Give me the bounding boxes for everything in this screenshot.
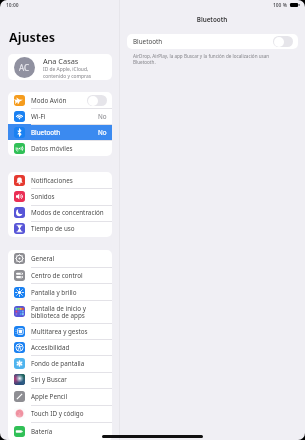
staticText: Bluetooth: [31, 128, 61, 137]
staticText: Modo Avión: [31, 96, 67, 105]
button[interactable]: Sonidos: [8, 188, 112, 204]
button[interactable]: Apple Pencil: [8, 388, 112, 405]
staticText: Apple Pencil: [31, 392, 68, 401]
staticText: Siri y Buscar: [31, 375, 67, 384]
staticText: Touch ID y código: [31, 409, 84, 418]
button[interactable]: Toggle: [87, 95, 107, 106]
button[interactable]: Toggle: [273, 36, 293, 47]
staticText: ID de Apple, iCloud, contenido y compras: [43, 66, 92, 79]
staticText: No: [98, 128, 107, 137]
button[interactable]: Multitarea y gestos: [8, 323, 112, 339]
staticText: Bluetooth: [119, 15, 305, 24]
staticText: General: [31, 254, 55, 263]
button[interactable]: Bluetooth: [8, 124, 112, 140]
staticText: Notificaciones: [31, 176, 73, 185]
button[interactable]: Pantalla y brillo: [8, 284, 112, 300]
staticText: Ajustes: [9, 29, 55, 46]
staticText: Centro de control: [31, 271, 83, 280]
staticText: AC: [19, 62, 30, 73]
staticText: Wi-Fi: [31, 112, 46, 121]
staticText: Pantalla y brillo: [31, 288, 77, 297]
button[interactable]: AC: [8, 54, 112, 80]
staticText: Accesibilidad: [31, 343, 70, 352]
staticText: Fondo de pantalla: [31, 359, 85, 368]
button[interactable]: Bluetooth: [127, 34, 298, 49]
staticText: Modos de concentración: [31, 208, 104, 217]
staticText: Tiempo de uso: [31, 224, 75, 233]
button[interactable]: Wi-Fi: [8, 108, 112, 124]
staticText: Bluetooth: [133, 37, 163, 46]
staticText: 10:00: [6, 2, 19, 9]
staticText: Ana Casas: [43, 56, 79, 66]
button[interactable]: Accesibilidad: [8, 339, 112, 355]
staticText: No: [98, 112, 107, 121]
button[interactable]: Siri y Buscar: [8, 371, 112, 388]
button[interactable]: Touch ID y código: [8, 405, 112, 422]
button[interactable]: Tiempo de uso: [8, 220, 112, 236]
button[interactable]: Centro de control: [8, 267, 112, 284]
button[interactable]: Fondo de pantalla: [8, 355, 112, 371]
button[interactable]: Modo Avión: [8, 92, 112, 108]
staticText: Batería: [31, 427, 53, 436]
button[interactable]: Modos de concentración: [8, 204, 112, 220]
staticText: Pantalla de inicio y biblioteca de apps: [31, 304, 86, 320]
staticText: Sonidos: [31, 192, 55, 201]
button[interactable]: General: [8, 250, 112, 267]
button[interactable]: Pantalla de inicio y biblioteca de apps: [8, 300, 112, 323]
button[interactable]: Datos móviles: [8, 140, 112, 156]
button[interactable]: Batería: [8, 422, 112, 440]
staticText: AirDrop, AirPlay, la app Buscar y la fun…: [133, 53, 270, 65]
button[interactable]: Notificaciones: [8, 172, 112, 188]
staticText: 100 %: [273, 2, 287, 9]
staticText: Datos móviles: [31, 144, 73, 153]
staticText: Multitarea y gestos: [31, 327, 88, 336]
